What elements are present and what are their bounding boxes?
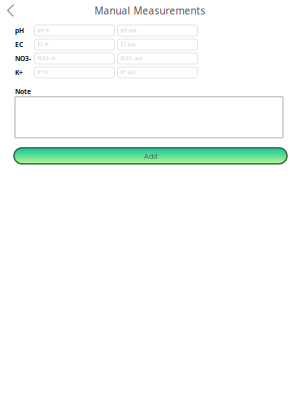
staticText: NO3-	[15, 54, 31, 63]
staticText: EC in	[37, 41, 48, 48]
staticText: pH	[15, 26, 24, 35]
button[interactable]: Add	[14, 148, 287, 164]
staticText: EC	[15, 40, 23, 49]
staticText: Manual Measurements	[94, 4, 205, 17]
staticText: Add	[144, 151, 157, 161]
staticText: K+ in	[37, 69, 48, 76]
button[interactable]: Back	[0, 0, 22, 19]
staticText: NO3- out	[120, 55, 142, 62]
staticText: EC out	[120, 41, 135, 48]
staticText: Note	[15, 87, 31, 96]
staticText: K+	[15, 68, 23, 77]
staticText: K+ out	[120, 69, 135, 76]
staticText: NO3- in	[37, 55, 55, 62]
staticText: pH out	[120, 27, 136, 34]
staticText: pH in	[37, 27, 49, 34]
